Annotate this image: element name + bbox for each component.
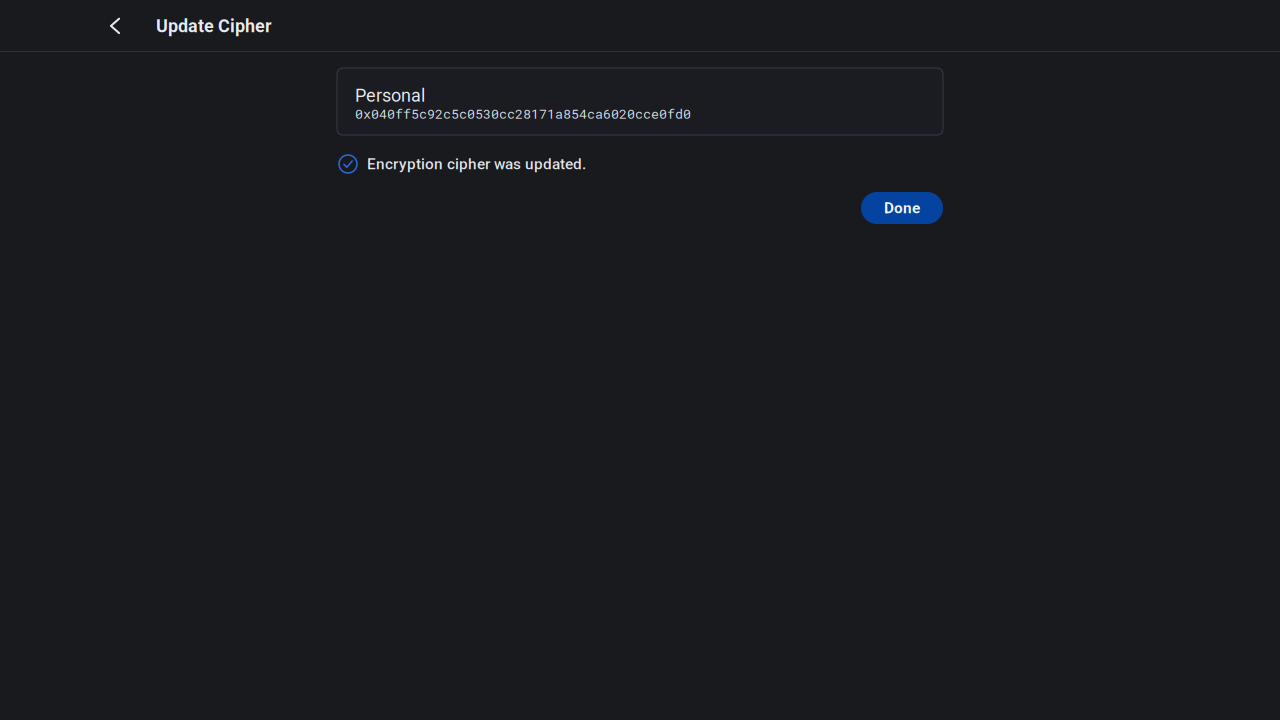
staticText: 0x040ff5c92c5c0530cc28171a854ca6020cce0f… (355, 105, 691, 122)
button[interactable]: Back (104, 0, 126, 52)
staticText: Done (884, 199, 920, 217)
button[interactable]: Done (861, 192, 943, 224)
staticText: Personal (355, 85, 425, 106)
staticText: Update Cipher (156, 15, 272, 37)
staticText: Encryption cipher was updated. (367, 155, 586, 173)
